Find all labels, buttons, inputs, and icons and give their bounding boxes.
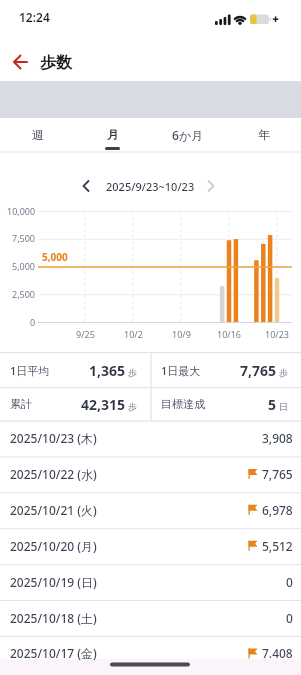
staticText: 42,315: [81, 395, 126, 414]
button[interactable]: 2025/10/17 (金): [0, 635, 301, 671]
button[interactable]: 2025/10/23 (木): [0, 420, 301, 456]
staticText: 2025/10/22 (水): [10, 466, 97, 482]
staticText: 月: [107, 127, 119, 142]
button[interactable]: 2025/10/21 (火): [0, 492, 301, 528]
staticText: 7,765: [240, 361, 277, 380]
staticText: 1,365: [89, 361, 126, 380]
staticText: 2025/10/18 (土): [10, 610, 97, 626]
staticText: 10/2: [124, 328, 143, 340]
button[interactable]: [76, 175, 98, 197]
staticText: 10,000: [7, 205, 36, 217]
staticText: 1日最大: [161, 363, 201, 378]
staticText: 2025/10/17 (金): [10, 645, 97, 661]
button[interactable]: 2025/10/19 (日): [0, 564, 301, 600]
staticText: 12:24: [19, 9, 50, 25]
button[interactable]: [202, 175, 224, 197]
staticText: 7,500: [12, 232, 36, 244]
staticText: 1日平均: [10, 363, 50, 378]
staticText: 10/16: [217, 328, 241, 340]
button[interactable]: 月: [75, 121, 150, 148]
button[interactable]: 2025/10/22 (水): [0, 456, 301, 492]
staticText: 2025/9/23~10/23: [106, 179, 195, 194]
staticText: 累計: [10, 397, 32, 411]
button[interactable]: [6, 52, 32, 74]
staticText: 日: [279, 401, 288, 412]
staticText: 2025/10/19 (日): [10, 574, 97, 590]
staticText: 目標達成: [161, 397, 205, 411]
staticText: 10/23: [265, 328, 289, 340]
staticText: 6,978: [262, 502, 293, 518]
staticText: 5,000: [42, 250, 68, 264]
staticText: 歩: [279, 367, 288, 378]
staticText: 5,000: [12, 260, 36, 272]
staticText: 6か月: [172, 127, 204, 143]
staticText: 0: [286, 610, 293, 626]
staticText: 歩: [128, 367, 137, 378]
staticText: 2025/10/20 (月): [10, 538, 97, 554]
button[interactable]: 6か月: [150, 121, 226, 148]
staticText: 3,908: [262, 430, 293, 446]
staticText: 5,512: [262, 538, 293, 554]
button[interactable]: 年: [226, 121, 301, 148]
staticText: 週: [32, 127, 44, 142]
staticText: 年: [258, 127, 270, 142]
staticText: 7.408: [262, 645, 293, 661]
staticText: 2025/10/23 (木): [10, 430, 97, 446]
staticText: 0: [286, 574, 293, 590]
staticText: 7,765: [262, 466, 293, 482]
staticText: 10/9: [172, 328, 191, 340]
staticText: 9/25: [76, 328, 95, 340]
staticText: 2,500: [12, 288, 36, 300]
button[interactable]: 週: [0, 121, 75, 148]
button[interactable]: 2025/10/20 (月): [0, 528, 301, 564]
button[interactable]: 2025/10/18 (土): [0, 600, 301, 636]
staticText: 歩: [128, 401, 137, 412]
staticText: 5: [268, 395, 277, 414]
staticText: 歩数: [40, 53, 72, 73]
staticText: 0: [30, 316, 36, 328]
staticText: 2025/10/21 (火): [10, 502, 97, 518]
